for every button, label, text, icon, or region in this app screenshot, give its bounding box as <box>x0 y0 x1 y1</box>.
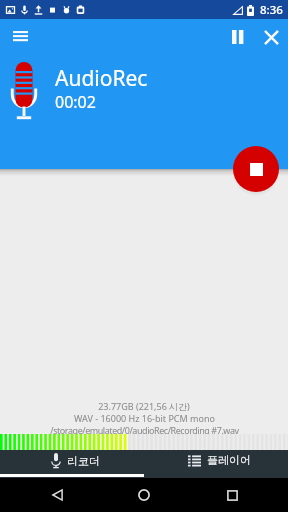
button[interactable]: 플레이어 <box>144 450 288 478</box>
staticText: 리코더 <box>67 454 100 468</box>
staticText: 00:02 <box>55 91 96 113</box>
staticText: 8:36 <box>260 2 283 18</box>
button[interactable]: Stop recording <box>233 146 279 192</box>
button[interactable]: Back <box>41 479 73 511</box>
button[interactable]: Close <box>258 24 284 50</box>
staticText: WAV - 16000 Hz 16-bit PCM mono <box>74 412 215 424</box>
staticText: 23.77GB (221,56 시간) <box>98 400 190 412</box>
staticText: AudioRec <box>55 64 148 93</box>
button[interactable]: Open navigation menu <box>4 20 36 52</box>
button[interactable]: Recent apps <box>216 479 248 511</box>
button[interactable]: Home <box>128 479 160 511</box>
staticText: /storage/emulated/0/audioRec/Recording #… <box>50 424 239 436</box>
staticText: 플레이어 <box>207 453 251 467</box>
button[interactable]: Pause recording <box>224 24 250 50</box>
button[interactable]: 리코더 <box>0 450 144 478</box>
